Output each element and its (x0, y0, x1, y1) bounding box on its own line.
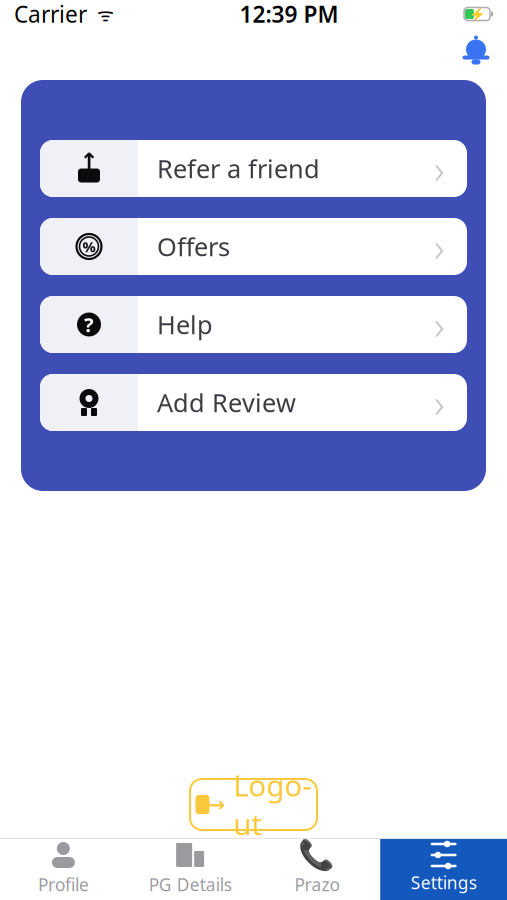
staticText: ? (84, 311, 94, 338)
button[interactable]: ? (40, 296, 467, 353)
button[interactable]: % (40, 218, 467, 275)
button[interactable]: PG Details (127, 838, 254, 900)
staticText: PG Details (149, 873, 232, 896)
staticText: Carrier (14, 0, 87, 29)
staticText: % (82, 237, 95, 256)
staticText: ⚡ (468, 6, 485, 22)
staticText: › (434, 142, 445, 195)
button[interactable]: Add Review (40, 374, 467, 431)
button[interactable]: Settings (380, 838, 507, 900)
button[interactable]: → (190, 779, 317, 830)
staticText: › (434, 298, 445, 351)
staticText: ᯤ (87, 2, 114, 26)
staticText: Offers (157, 230, 230, 263)
button[interactable]: Profile (0, 838, 127, 900)
staticText: Add Review (157, 386, 296, 419)
staticText: Help (157, 308, 213, 341)
staticText: › (434, 220, 445, 273)
button[interactable]: 📞 (253, 838, 380, 900)
staticText: 12:39 PM (239, 0, 338, 29)
staticText: → (208, 793, 225, 816)
button[interactable]: Notifications (454, 28, 498, 72)
staticText: Profile (38, 873, 89, 896)
staticText: Logout (233, 765, 311, 843)
staticText: › (434, 376, 445, 429)
staticText: ↑ (79, 149, 98, 174)
staticText: Prazo (294, 873, 339, 896)
button[interactable]: ↑ (40, 140, 467, 197)
staticText: Refer a friend (157, 152, 320, 185)
staticText: 📞 (298, 838, 335, 872)
staticText: Settings (411, 871, 477, 894)
